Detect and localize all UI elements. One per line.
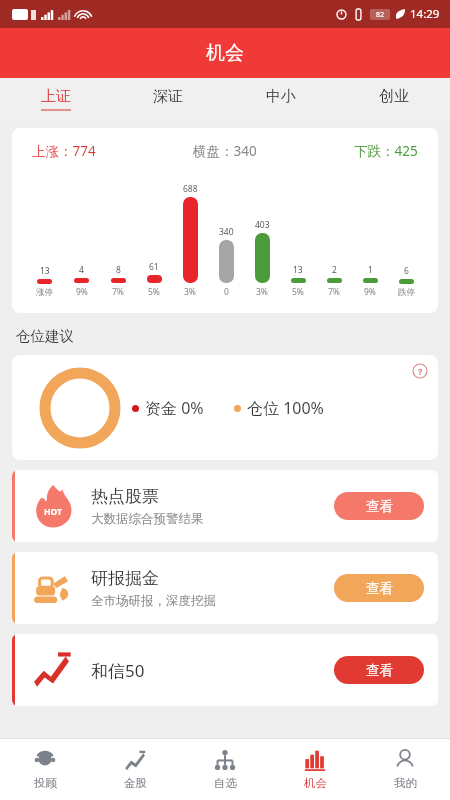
staticText: 上证: [41, 87, 71, 106]
staticText: 创业: [379, 87, 409, 106]
button[interactable]: 投顾: [0, 738, 90, 800]
staticText: 热点股票: [91, 486, 159, 507]
button[interactable]: 研报掘金: [12, 552, 438, 624]
staticText: 8: [116, 264, 121, 276]
staticText: 1: [368, 264, 373, 276]
staticText: 9%: [76, 286, 88, 298]
button[interactable]: 帮助: [412, 363, 428, 379]
staticText: 3%: [256, 286, 268, 298]
staticText: 403: [255, 219, 270, 231]
staticText: 涨停: [36, 287, 53, 298]
button[interactable]: 我的: [360, 738, 450, 800]
staticText: 688: [183, 183, 198, 195]
staticText: 和信50: [91, 659, 145, 682]
staticText: 大数据综合预警结果: [91, 511, 204, 527]
staticText: 7%: [112, 286, 124, 298]
staticText: 6: [404, 265, 409, 277]
staticText: 研报掘金: [91, 568, 159, 589]
button[interactable]: 上证: [0, 78, 112, 120]
staticText: 资金 0%: [145, 397, 204, 419]
staticText: 61: [149, 261, 159, 273]
button[interactable]: 查看: [334, 574, 424, 602]
staticText: ?: [418, 365, 423, 377]
staticText: 上涨：774: [32, 142, 96, 160]
staticText: 5%: [292, 286, 304, 298]
button[interactable]: 金股: [90, 738, 180, 800]
button[interactable]: 创业: [337, 78, 450, 120]
staticText: 机会: [304, 776, 327, 790]
staticText: 13: [40, 265, 50, 277]
button[interactable]: 查看: [334, 656, 424, 684]
staticText: 中小: [266, 87, 296, 106]
staticText: 0: [224, 286, 229, 298]
staticText: 查看: [366, 662, 393, 679]
staticText: 机会: [206, 41, 244, 65]
staticText: 金股: [124, 776, 147, 790]
button[interactable]: HOT: [12, 470, 438, 542]
staticText: 自选: [214, 776, 237, 790]
staticText: 3%: [184, 286, 196, 298]
staticText: 82: [376, 10, 385, 20]
staticText: 全市场研报，深度挖掘: [91, 593, 216, 609]
staticText: 仓位建议: [16, 327, 74, 345]
staticText: 仓位 100%: [247, 397, 324, 419]
button[interactable]: 查看: [334, 492, 424, 520]
staticText: 4: [79, 264, 84, 276]
staticText: 340: [219, 226, 234, 238]
staticText: 13: [293, 264, 303, 276]
staticText: 2: [332, 264, 337, 276]
button[interactable]: 和信50: [12, 634, 438, 706]
staticText: 14:29: [410, 6, 440, 22]
staticText: 横盘：340: [193, 142, 257, 160]
button[interactable]: 深证: [112, 78, 224, 120]
button[interactable]: 机会: [270, 738, 360, 800]
button[interactable]: 自选: [180, 738, 270, 800]
staticText: 查看: [366, 580, 393, 597]
staticText: 投顾: [34, 776, 57, 790]
staticText: HOT: [44, 506, 62, 518]
staticText: 7%: [328, 286, 340, 298]
staticText: 跌停: [398, 287, 415, 298]
staticText: 深证: [153, 87, 183, 106]
staticText: 下跌：425: [354, 142, 418, 160]
staticText: 9%: [364, 286, 376, 298]
staticText: 我的: [394, 776, 417, 790]
staticText: 查看: [366, 498, 393, 515]
staticText: 5%: [148, 286, 160, 298]
button[interactable]: 中小: [224, 78, 337, 120]
